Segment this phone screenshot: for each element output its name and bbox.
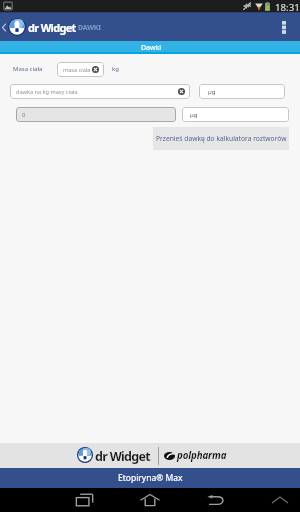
staticText: Etopiryna® Max	[118, 472, 183, 484]
staticText: 18:31	[275, 1, 300, 13]
staticText: dr Widget	[28, 20, 76, 35]
button[interactable]: µg	[199, 84, 285, 99]
button[interactable]: masa ciała	[57, 62, 104, 77]
button[interactable]: Recent apps	[66, 488, 102, 512]
staticText: masa ciała	[63, 66, 91, 74]
button[interactable]: Dawki	[0, 41, 300, 52]
button[interactable]: Home	[132, 488, 168, 512]
staticText: polpharma	[177, 449, 227, 462]
button[interactable]: More options	[270, 12, 298, 41]
staticText: kg	[112, 65, 119, 73]
staticText: dawka na kg masy ciała	[16, 88, 78, 96]
staticText: Masa ciała	[13, 65, 43, 73]
staticText: µg	[190, 111, 198, 119]
button[interactable]: dr Widget	[0, 18, 101, 36]
staticText: DAWKI	[78, 23, 101, 33]
button[interactable]: Show keyboard	[266, 488, 294, 512]
staticText: 0	[22, 111, 26, 119]
staticText: dr Widget	[95, 448, 150, 465]
staticText: Dawki	[141, 43, 162, 53]
staticText: Przenieś dawkę do kalkulatora roztworów	[156, 134, 287, 143]
button[interactable]: Back	[197, 488, 233, 512]
staticText: µg	[208, 88, 216, 96]
button[interactable]: µg	[182, 107, 289, 122]
button[interactable]: Przenieś dawkę do kalkulatora roztworów	[153, 127, 289, 150]
button[interactable]: dawka na kg masy ciała	[10, 84, 190, 99]
